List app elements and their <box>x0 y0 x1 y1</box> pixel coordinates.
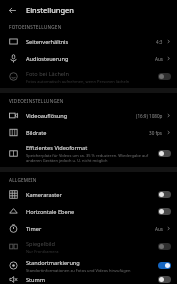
button[interactable]: Bildrate <box>0 124 177 141</box>
staticText: Foto bei Lächeln <box>26 70 69 78</box>
button[interactable]: Horizontale Ebene <box>0 203 177 220</box>
button[interactable]: Toggle <box>158 208 171 215</box>
staticText: Nur Frontkamera <box>26 249 59 254</box>
staticText: Aus <box>155 226 163 232</box>
staticText: (16:9) 1080p <box>136 113 163 119</box>
staticText: VIDEOEINSTELLUNGEN <box>9 98 64 104</box>
button[interactable]: Foto bei Lächeln <box>0 67 177 86</box>
button[interactable]: Toggle <box>158 243 171 250</box>
staticText: ALLGEMEIN <box>9 177 37 183</box>
button[interactable]: Toggle <box>158 262 171 269</box>
button[interactable]: Toggle <box>158 276 171 283</box>
button[interactable]: Back <box>4 2 20 18</box>
button[interactable]: Standortmarkierung <box>0 256 177 275</box>
button[interactable]: Videoauflösung <box>0 107 177 124</box>
staticText: Standortinformationen zu Fotos und Video… <box>26 268 131 273</box>
staticText: 4:3 <box>156 39 163 45</box>
staticText: Speicherplatz für Videos um ca. 35 % red… <box>26 153 154 163</box>
staticText: Spiegelbild <box>26 240 55 248</box>
staticText: Effizientes Videoformat <box>26 144 88 152</box>
staticText: Horizontale Ebene <box>26 208 75 216</box>
staticText: Bildrate <box>26 129 149 137</box>
staticText: Stumm <box>26 276 46 284</box>
button[interactable]: Toggle <box>158 73 171 80</box>
staticText: Standortmarkierung <box>26 259 80 267</box>
staticText: Kameraraster <box>26 191 62 199</box>
button[interactable]: Toggle <box>158 150 171 157</box>
staticText: Timer <box>26 225 155 233</box>
button[interactable]: Timer <box>0 220 177 237</box>
staticText: Aus <box>155 56 163 62</box>
staticText: Videoauflösung <box>26 112 136 120</box>
button[interactable]: Kameraraster <box>0 186 177 203</box>
button[interactable]: Spiegelbild <box>0 237 177 256</box>
staticText: Fotos automatisch aufnehmen, wenn Person… <box>26 79 130 84</box>
staticText: Seitenverhältnis <box>26 38 156 46</box>
button[interactable]: Stumm <box>0 275 177 284</box>
button[interactable]: Seitenverhältnis <box>0 33 177 50</box>
staticText: Einstellungen <box>26 5 74 15</box>
staticText: FOTOEINSTELLUNGEN <box>9 24 62 30</box>
button[interactable]: Audiosteuerung <box>0 50 177 67</box>
staticText: 30 fps <box>149 130 163 136</box>
button[interactable]: Toggle <box>158 191 171 198</box>
staticText: Audiosteuerung <box>26 55 155 63</box>
button[interactable]: Effizientes Videoformat <box>0 141 177 165</box>
